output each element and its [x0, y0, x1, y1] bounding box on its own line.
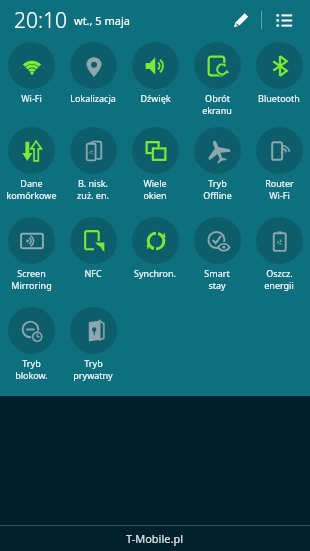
staticText: Tryb: [208, 177, 227, 189]
staticText: prywatny: [73, 369, 113, 381]
button[interactable]: Smart stay: [186, 217, 248, 291]
staticText: okien: [143, 189, 167, 201]
button[interactable]: Oszcz. energii: [248, 217, 310, 291]
staticText: Synchron.: [134, 267, 176, 279]
staticText: B. nisk.: [78, 177, 108, 189]
staticText: NFC: [84, 267, 102, 279]
staticText: ekranu: [202, 104, 232, 116]
button[interactable]: Tryb Offline: [186, 127, 248, 201]
button[interactable]: Dane komórkowe: [0, 127, 62, 201]
button[interactable]: Router Wi-Fi: [248, 127, 310, 201]
button[interactable]: NFC: [62, 217, 124, 279]
staticText: Lokalizacja: [70, 92, 116, 104]
staticText: zuż. en.: [77, 189, 109, 201]
button[interactable]: Tryb prywatny: [62, 307, 124, 381]
staticText: stay: [208, 279, 226, 291]
button[interactable]: Synchron.: [124, 217, 186, 279]
button[interactable]: Obrót ekranu: [186, 42, 248, 116]
staticText: Smart: [204, 267, 230, 279]
button[interactable]: Edit: [227, 6, 255, 34]
staticText: Dane: [20, 177, 43, 189]
staticText: Mirroring: [11, 279, 52, 291]
button[interactable]: Wiele okien: [124, 127, 186, 201]
staticText: Screen: [17, 267, 46, 279]
button[interactable]: B. nisk. zuż. en.: [62, 127, 124, 201]
button[interactable]: Wi-Fi: [0, 42, 62, 104]
button[interactable]: Tryb blokow.: [0, 307, 62, 381]
staticText: Tryb: [84, 357, 103, 369]
button[interactable]: Bluetooth: [248, 42, 310, 104]
button[interactable]: Dźwięk: [124, 42, 186, 104]
button[interactable]: Screen Mirroring: [0, 217, 62, 291]
staticText: komórkowe: [6, 189, 57, 201]
staticText: Wi-Fi: [21, 92, 42, 104]
staticText: T-Mobile.pl: [126, 531, 184, 546]
staticText: wt., 5 maja: [74, 13, 130, 28]
staticText: 20:10: [14, 6, 68, 35]
staticText: Tryb: [22, 357, 41, 369]
staticText: Wiele: [143, 177, 167, 189]
staticText: Offline: [203, 189, 232, 201]
button[interactable]: Menu: [270, 6, 298, 34]
staticText: blokow.: [15, 369, 48, 381]
staticText: Bluetooth: [258, 92, 300, 104]
staticText: Oszcz.: [266, 267, 293, 279]
staticText: Wi-Fi: [269, 189, 290, 201]
staticText: Dźwięk: [140, 92, 171, 104]
staticText: Obrót: [205, 92, 230, 104]
button[interactable]: Lokalizacja: [62, 42, 124, 104]
staticText: Router: [265, 177, 294, 189]
staticText: energii: [264, 279, 294, 291]
